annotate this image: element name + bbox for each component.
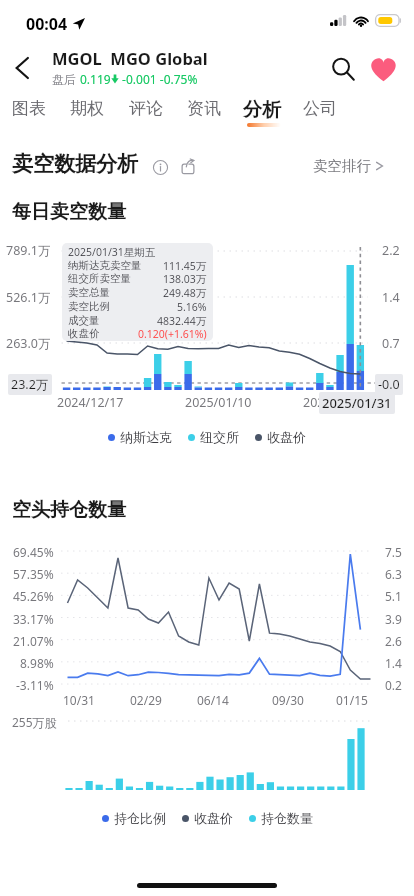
staticText: 526.1万: [6, 289, 51, 306]
staticText: 期权: [70, 98, 104, 119]
button[interactable]: 期权: [64, 98, 110, 130]
staticText: 分析: [243, 98, 281, 122]
button[interactable]: 持仓数量: [249, 810, 313, 826]
button[interactable]: 分析: [237, 98, 287, 130]
staticText: 纳斯达克: [120, 429, 172, 445]
staticText: 收盘价: [267, 429, 306, 445]
button[interactable]: Info: [149, 156, 171, 178]
staticText: 2025/01/31: [322, 394, 392, 412]
staticText: 0.2: [385, 677, 402, 693]
staticText: 06/14: [197, 692, 229, 708]
staticText: 1.4: [382, 289, 400, 306]
staticText: 卖空总量: [68, 286, 110, 299]
staticText: 33.17%: [13, 611, 54, 627]
button[interactable]: 图表: [6, 98, 52, 130]
staticText: 23.2万: [11, 376, 49, 393]
staticText: 公司: [303, 98, 337, 119]
button[interactable]: 卖空排行: [313, 157, 384, 175]
staticText: 4832.44万: [157, 314, 207, 328]
staticText: 45.26%: [13, 588, 54, 604]
staticText: 249.48万: [163, 286, 207, 300]
staticText: 卖空排行: [313, 157, 371, 175]
button[interactable]: Share: [177, 155, 199, 177]
staticText: 卖空比例: [68, 300, 110, 313]
staticText: 0.120(+1.61%): [138, 327, 207, 341]
staticText: 资讯: [187, 98, 221, 119]
staticText: -0.001 -0.75%: [119, 71, 198, 87]
staticText: 263.0万: [6, 335, 51, 352]
staticText: 5.1: [385, 588, 402, 604]
staticText: 2025/01/10: [185, 394, 252, 411]
staticText: 789.1万: [6, 242, 51, 259]
staticText: 2.2: [382, 242, 400, 259]
staticText: 5.16%: [177, 300, 207, 314]
staticText: 2025/01/31星期五: [68, 245, 156, 259]
staticText: -0.0: [378, 376, 400, 393]
button[interactable]: 纽交所: [188, 429, 239, 445]
button[interactable]: 纳斯达克: [108, 429, 172, 445]
staticText: 02/29: [130, 692, 162, 708]
staticText: 纽交所卖空量: [68, 272, 131, 285]
staticText: 盘后: [52, 71, 80, 87]
staticText: 21.07%: [13, 633, 54, 649]
staticText: 评论: [129, 98, 163, 119]
staticText: 69.45%: [13, 544, 54, 560]
staticText: 10/31: [63, 692, 95, 708]
button[interactable]: 公司: [297, 98, 343, 130]
staticText: -3.11%: [16, 677, 54, 693]
staticText: 111.45万: [163, 259, 207, 273]
staticText: 持仓数量: [261, 810, 313, 826]
staticText: 6.3: [385, 566, 402, 582]
button[interactable]: 收盘价: [182, 810, 233, 826]
button[interactable]: 持仓比例: [102, 810, 166, 826]
staticText: 8.98%: [20, 655, 54, 671]
staticText: 0.7: [382, 335, 400, 352]
staticText: 138.03万: [163, 272, 207, 286]
staticText: 成交量: [68, 314, 100, 327]
button[interactable]: Favorite: [363, 49, 403, 89]
staticText: 00:04: [26, 13, 68, 35]
staticText: 纳斯达克卖空量: [68, 259, 142, 272]
staticText: 纽交所: [200, 429, 239, 445]
staticText: 图表: [12, 98, 46, 119]
button[interactable]: 资讯: [181, 98, 227, 130]
staticText: 收盘价: [68, 327, 100, 340]
staticText: 持仓比例: [114, 810, 166, 826]
button[interactable]: Search: [323, 49, 363, 89]
button[interactable]: 评论: [123, 98, 169, 130]
staticText: 每日卖空数量: [12, 200, 126, 224]
staticText: 空头持仓数量: [12, 498, 126, 522]
staticText: 3.9: [385, 611, 402, 627]
staticText: 01/15: [336, 692, 368, 708]
staticText: 0.119: [80, 71, 111, 87]
staticText: 57.35%: [13, 566, 54, 582]
staticText: MGOL MGO Global: [52, 47, 208, 69]
button[interactable]: 收盘价: [255, 429, 306, 445]
staticText: 1.4: [385, 655, 402, 671]
staticText: 7.5: [385, 544, 402, 560]
button[interactable]: Back: [2, 48, 42, 88]
staticText: 2024/12/17: [57, 394, 124, 411]
staticText: 09/30: [272, 692, 304, 708]
staticText: 2.6: [385, 633, 402, 649]
staticText: 2025/: [303, 394, 337, 411]
staticText: 收盘价: [194, 810, 233, 826]
staticText: 255万股: [12, 714, 57, 730]
staticText: 卖空数据分析: [12, 151, 138, 177]
